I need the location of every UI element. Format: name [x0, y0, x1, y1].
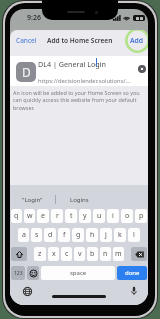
button[interactable]: Logins	[56, 190, 102, 209]
button[interactable]: h	[86, 228, 98, 242]
staticText: z	[38, 249, 42, 259]
button[interactable]: Emoji keyboard	[27, 266, 39, 280]
button[interactable]: Cancel	[13, 33, 40, 48]
button[interactable]: v	[74, 247, 85, 261]
staticText: k	[118, 230, 122, 240]
staticText: https://decisionlender.solutions/...	[38, 77, 131, 85]
staticText: l	[133, 230, 135, 240]
staticText: done	[125, 269, 140, 277]
button[interactable]: r	[51, 209, 63, 223]
button[interactable]: j	[100, 228, 112, 242]
staticText: h	[90, 230, 95, 240]
staticText: o	[125, 211, 130, 221]
staticText: g	[76, 230, 81, 240]
staticText: DL4 | General Login	[38, 59, 107, 69]
staticText: b	[90, 249, 95, 259]
button[interactable]: Switch keyboard	[23, 287, 32, 296]
button[interactable]: w	[24, 209, 35, 223]
button[interactable]: n	[100, 247, 111, 261]
staticText: x	[52, 249, 56, 259]
button[interactable]: Clear text	[138, 65, 146, 73]
staticText: t	[70, 211, 73, 221]
button[interactable]: Shift	[11, 247, 27, 261]
button[interactable]: space	[41, 266, 115, 280]
button[interactable]: s	[31, 228, 42, 242]
staticText: n	[103, 249, 108, 259]
staticText: d	[48, 230, 53, 240]
button[interactable]: 123	[11, 266, 25, 280]
staticText: 9:26	[27, 13, 41, 23]
staticText: 123	[14, 270, 23, 277]
button[interactable]: y	[79, 209, 91, 223]
staticText: q	[14, 211, 19, 221]
button[interactable]: x	[48, 247, 59, 261]
button[interactable]: t	[65, 209, 77, 223]
button[interactable]: f	[58, 228, 70, 242]
button[interactable]: i	[107, 209, 119, 223]
button[interactable]: z	[34, 247, 46, 261]
button[interactable]: d	[44, 228, 56, 242]
staticText: j	[105, 230, 107, 240]
staticText: m	[115, 249, 122, 259]
button[interactable]: "Login"	[10, 190, 55, 209]
staticText: p	[139, 211, 144, 221]
staticText: a	[22, 230, 26, 240]
button[interactable]: p	[135, 209, 147, 223]
staticText: "Login"	[22, 196, 43, 204]
button[interactable]: Backspace	[131, 247, 147, 261]
button[interactable]: m	[113, 247, 124, 261]
button[interactable]: g	[72, 228, 84, 242]
button[interactable]: done	[117, 266, 147, 280]
staticText: v	[78, 249, 82, 259]
button[interactable]: q	[11, 209, 22, 223]
staticText: s	[35, 230, 39, 240]
staticText: i	[112, 211, 114, 221]
button[interactable]: l	[128, 228, 140, 242]
staticText: D	[22, 64, 31, 80]
button[interactable]: a	[18, 228, 29, 242]
button[interactable]: e	[37, 209, 49, 223]
staticText: c	[65, 249, 69, 259]
staticText: Add to Home Screen	[47, 36, 113, 45]
staticText: r	[56, 211, 59, 221]
button[interactable]: Add	[127, 33, 147, 48]
button[interactable]: k	[114, 228, 126, 242]
staticText: y	[83, 211, 87, 221]
staticText: w	[27, 211, 33, 221]
button[interactable]: o	[121, 209, 133, 223]
button[interactable]: c	[61, 247, 72, 261]
button[interactable]: u	[93, 209, 105, 223]
staticText: Logins	[70, 196, 89, 204]
staticText: space	[70, 269, 87, 277]
staticText: An icon will be added to your Home Scree…	[13, 89, 143, 112]
button[interactable]: b	[87, 247, 98, 261]
button[interactable]: Dictation	[131, 286, 137, 296]
staticText: f	[63, 230, 66, 240]
staticText: e	[41, 211, 45, 221]
staticText: u	[97, 211, 102, 221]
